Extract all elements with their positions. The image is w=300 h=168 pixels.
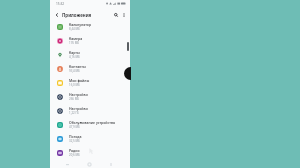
button[interactable]: Калькулятор bbox=[50, 20, 130, 34]
staticText: 93,4 МБ bbox=[69, 69, 80, 73]
button[interactable]: Search bbox=[112, 11, 120, 19]
button[interactable]: More options bbox=[120, 11, 128, 19]
button[interactable]: Back bbox=[53, 11, 61, 19]
staticText: 8,44 МБ bbox=[69, 27, 80, 31]
button[interactable]: Recents bbox=[63, 160, 71, 168]
button[interactable]: Радио bbox=[50, 146, 130, 160]
staticText: Погода bbox=[69, 134, 82, 139]
staticText: Приложения bbox=[62, 12, 92, 18]
staticText: 266 МБ bbox=[69, 97, 80, 101]
staticText: 20,6 МБ bbox=[69, 153, 80, 157]
button[interactable]: Home bbox=[85, 160, 93, 168]
button[interactable]: Настройки bbox=[50, 104, 130, 118]
staticText: 32,5 МБ bbox=[69, 139, 80, 143]
staticText: 1,22 ГБ bbox=[69, 111, 79, 115]
button[interactable]: Карты bbox=[50, 48, 130, 62]
staticText: Камера bbox=[69, 36, 83, 41]
staticText: 4,16 МБ bbox=[69, 55, 80, 59]
button[interactable]: Камера bbox=[50, 34, 130, 48]
staticText: 15:32 bbox=[56, 2, 65, 6]
staticText: 47,9 МБ bbox=[69, 125, 80, 129]
button[interactable]: Контакты bbox=[50, 62, 130, 76]
staticText: Контакты bbox=[69, 64, 86, 69]
button[interactable]: Настройки bbox=[50, 90, 130, 104]
button[interactable]: Мои файлы bbox=[50, 76, 130, 90]
button[interactable]: Обслуживание устройства bbox=[50, 118, 130, 132]
button[interactable]: Погода bbox=[50, 132, 130, 146]
staticText: Радио bbox=[69, 148, 80, 153]
staticText: Калькулятор bbox=[69, 22, 92, 27]
staticText: Карты bbox=[69, 50, 80, 55]
staticText: Настройки bbox=[69, 106, 88, 111]
staticText: 176 МБ bbox=[69, 41, 80, 45]
staticText: 16,0 МБ bbox=[69, 83, 80, 87]
staticText: Обслуживание устройства bbox=[69, 120, 116, 125]
staticText: Мои файлы bbox=[69, 78, 90, 83]
button[interactable]: Back bbox=[107, 160, 115, 168]
staticText: Настройки bbox=[69, 92, 88, 97]
